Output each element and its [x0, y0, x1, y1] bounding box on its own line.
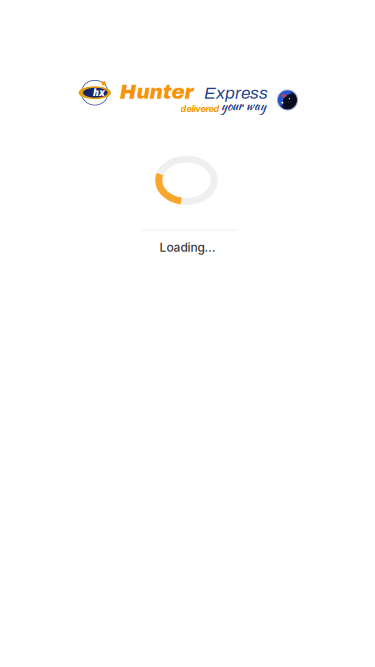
staticText: hx	[93, 86, 105, 98]
staticText: Hunter	[119, 81, 193, 103]
staticText: Express	[204, 84, 268, 102]
staticText: delivered	[180, 104, 219, 114]
staticText: Loading…	[159, 240, 215, 255]
staticText: your way	[221, 97, 266, 115]
